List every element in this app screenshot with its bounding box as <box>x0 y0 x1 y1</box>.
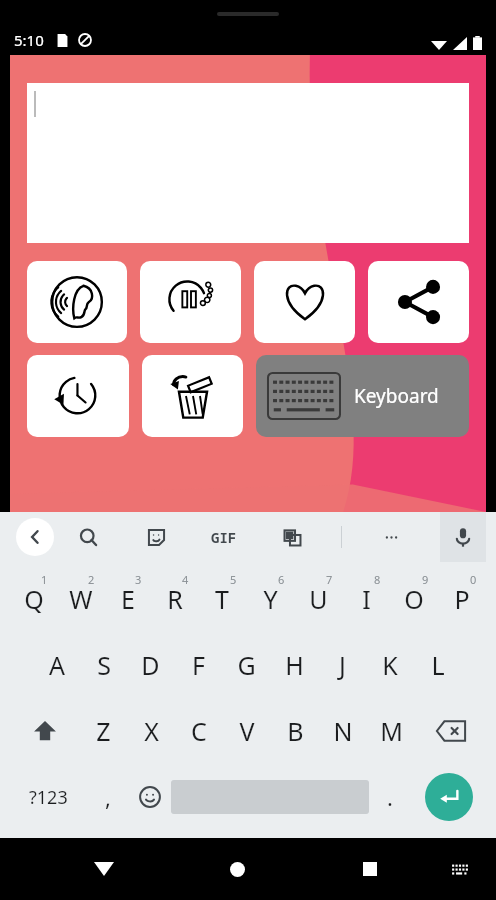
button[interactable]: F <box>174 632 222 698</box>
staticText: N <box>333 714 353 748</box>
button[interactable]: Backspace <box>415 698 486 764</box>
staticText: Keyboard <box>354 383 439 409</box>
button[interactable]: J <box>318 632 366 698</box>
button[interactable]: B <box>271 698 319 764</box>
button[interactable]: Shift <box>10 698 80 764</box>
staticText: 4 <box>182 572 189 587</box>
button[interactable]: N <box>319 698 367 764</box>
staticText: R <box>167 582 183 616</box>
staticText: S <box>97 648 111 682</box>
button[interactable]: A <box>33 632 80 698</box>
button[interactable]: Z <box>80 698 127 764</box>
button[interactable]: Q <box>10 566 57 632</box>
staticText: U <box>309 582 328 616</box>
button[interactable]: C <box>175 698 223 764</box>
button[interactable]: Delete <box>142 355 243 437</box>
staticText: 6 <box>278 572 285 587</box>
button[interactable]: Keyboard <box>256 355 469 437</box>
staticText: M <box>380 714 403 748</box>
button[interactable]: T <box>198 566 246 632</box>
button[interactable]: Y <box>246 566 294 632</box>
button[interactable]: Favourite <box>254 261 355 343</box>
button[interactable]: Switch keyboard <box>440 849 480 889</box>
staticText: H <box>285 648 304 682</box>
button[interactable]: Voice input <box>440 512 486 562</box>
staticText: Y <box>263 582 278 616</box>
staticText: GIF <box>211 528 237 547</box>
staticText: Q <box>24 582 44 616</box>
button[interactable]: , <box>86 764 129 830</box>
staticText: C <box>191 714 207 748</box>
button[interactable]: S <box>80 632 127 698</box>
button[interactable]: Pause <box>140 261 241 343</box>
button[interactable]: Speak <box>27 261 127 343</box>
staticText: 8 <box>374 572 381 587</box>
button[interactable]: Back <box>16 518 54 556</box>
staticText: J <box>339 648 346 682</box>
staticText: X <box>144 714 159 748</box>
staticText: 5:10 <box>14 30 44 50</box>
button[interactable]: ?123 <box>10 764 86 830</box>
staticText: 3 <box>135 572 142 587</box>
button[interactable]: Home <box>215 847 259 891</box>
staticText: 0 <box>470 572 477 587</box>
button[interactable]: P <box>438 566 486 632</box>
button[interactable]: History <box>27 355 129 437</box>
button[interactable]: H <box>270 632 318 698</box>
button[interactable]: I <box>342 566 390 632</box>
button[interactable]: G <box>222 632 270 698</box>
button[interactable]: Search <box>69 518 107 556</box>
button[interactable]: More options <box>372 518 410 556</box>
button[interactable]: Emoji <box>129 764 171 830</box>
button[interactable]: K <box>366 632 414 698</box>
button[interactable]: GIF <box>205 522 243 553</box>
button[interactable]: Translate <box>273 518 311 556</box>
button[interactable]: R <box>151 566 198 632</box>
button[interactable]: O <box>390 566 438 632</box>
staticText: 7 <box>326 572 333 587</box>
button[interactable]: V <box>223 698 271 764</box>
staticText: Z <box>96 714 111 748</box>
button[interactable]: Stickers <box>137 518 175 556</box>
staticText: 9 <box>422 572 429 587</box>
staticText: 1 <box>41 572 48 587</box>
staticText: K <box>382 648 398 682</box>
staticText: D <box>141 648 160 682</box>
staticText: W <box>69 582 93 616</box>
staticText: F <box>192 648 205 682</box>
button[interactable]: W <box>57 566 104 632</box>
button[interactable]: D <box>127 632 174 698</box>
button[interactable]: X <box>127 698 175 764</box>
staticText: G <box>237 648 256 682</box>
button[interactable]: Recent apps <box>348 847 392 891</box>
button[interactable]: . <box>369 764 411 830</box>
staticText: O <box>404 582 424 616</box>
staticText: . <box>387 782 393 812</box>
button[interactable]: L <box>414 632 462 698</box>
button[interactable]: M <box>367 698 415 764</box>
staticText: 5 <box>230 572 237 587</box>
staticText: E <box>121 582 135 616</box>
button[interactable]: E <box>104 566 151 632</box>
staticText: ?123 <box>29 785 68 810</box>
button[interactable]: Enter <box>425 773 473 821</box>
staticText: P <box>454 582 470 616</box>
staticText: T <box>215 582 229 616</box>
button[interactable]: Back <box>82 847 126 891</box>
staticText: A <box>49 648 65 682</box>
staticText: , <box>105 782 111 812</box>
staticText: B <box>287 714 304 748</box>
staticText: V <box>239 714 255 748</box>
staticText: 2 <box>88 572 95 587</box>
button[interactable]: Share <box>368 261 469 343</box>
staticText: L <box>431 648 445 682</box>
staticText: I <box>362 582 371 616</box>
button[interactable]: U <box>294 566 342 632</box>
